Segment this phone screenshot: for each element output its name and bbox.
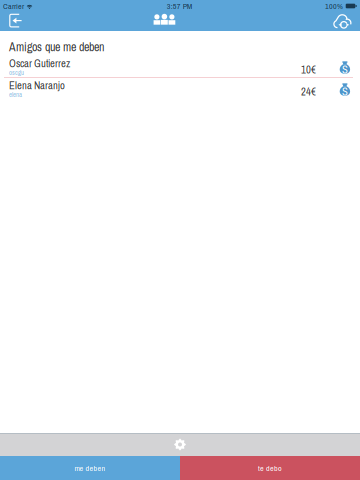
staticText: 3:57 PM: [167, 1, 192, 11]
staticText: 24€: [301, 84, 316, 99]
button[interactable]: me deben: [0, 456, 180, 480]
button[interactable]: te debo: [180, 456, 360, 480]
staticText: 10€: [301, 62, 316, 77]
staticText: oscgu: [9, 68, 24, 77]
button[interactable]: Amigos: [158, 12, 198, 31]
button[interactable]: Ajustes: [158, 433, 202, 456]
button[interactable]: Sincronizar: [324, 12, 360, 31]
staticText: Carrier: [3, 1, 24, 11]
button[interactable]: Elena Naranjo: [0, 78, 360, 100]
staticText: S: [342, 62, 348, 77]
button[interactable]: Oscar Gutierrez: [0, 56, 360, 78]
staticText: te debo: [258, 463, 282, 473]
staticText: S: [342, 84, 348, 99]
staticText: Oscar Gutierrez: [9, 56, 70, 71]
staticText: me deben: [74, 463, 105, 473]
staticText: elena: [9, 90, 22, 99]
staticText: 100%: [325, 1, 343, 11]
staticText: Amigos que me deben: [9, 39, 104, 55]
button[interactable]: Cerrar sesión: [0, 12, 32, 31]
staticText: Elena Naranjo: [9, 78, 65, 93]
